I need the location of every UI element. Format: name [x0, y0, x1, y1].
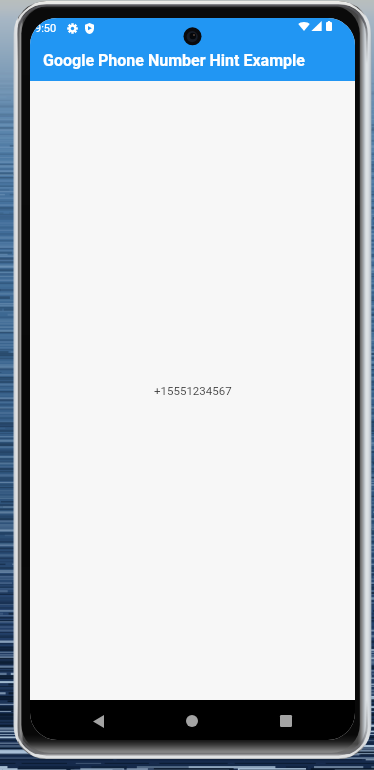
staticText: +15551234567 [154, 384, 232, 397]
button[interactable]: Home [171, 701, 213, 740]
button[interactable]: Recent apps [265, 701, 307, 740]
staticText: 9:50 [35, 22, 57, 35]
button[interactable]: Back [77, 701, 119, 740]
staticText: Google Phone Number Hint Example [43, 51, 305, 70]
